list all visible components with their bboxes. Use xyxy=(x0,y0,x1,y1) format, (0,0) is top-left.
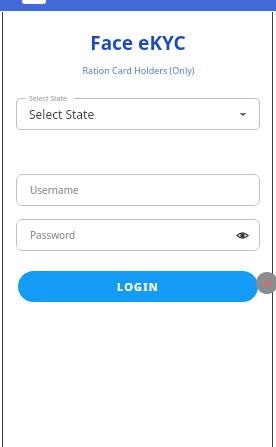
staticText: Select State xyxy=(29,94,68,104)
button[interactable]: Show password xyxy=(237,230,248,241)
staticText: Select State xyxy=(29,106,238,122)
staticText: Ration Card Holders (Only) xyxy=(82,64,195,76)
other: Open state list xyxy=(238,109,248,119)
staticText: Password xyxy=(30,228,237,242)
other: Recording indicator xyxy=(256,272,276,294)
staticText: Face eKYC xyxy=(90,30,186,56)
button[interactable]: Password xyxy=(16,219,260,251)
button[interactable]: Select State xyxy=(16,98,260,130)
staticText: LOGIN xyxy=(117,279,159,294)
button[interactable]: Username xyxy=(16,174,260,206)
button[interactable]: LOGIN xyxy=(18,271,258,302)
staticText: Username xyxy=(30,183,248,197)
